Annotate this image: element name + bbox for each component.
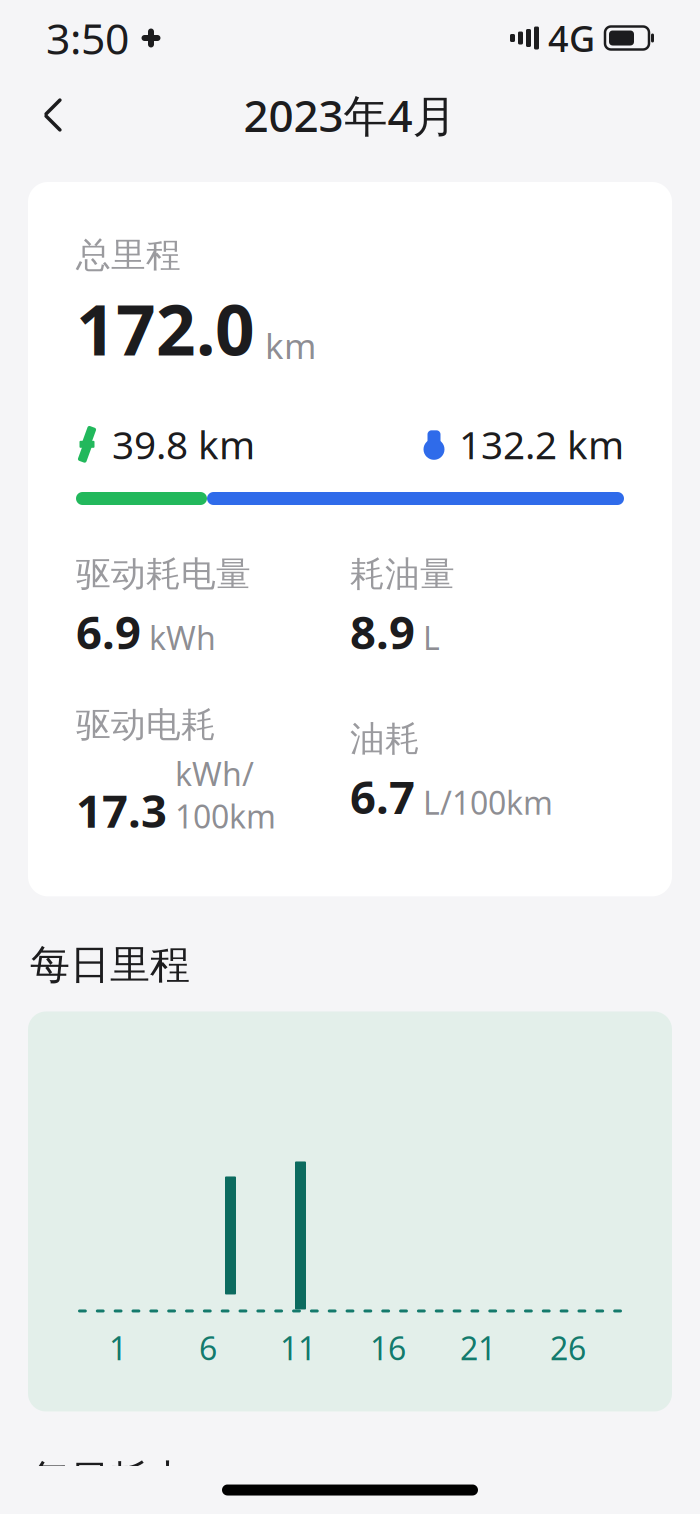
staticText: 2023年4月 (243, 86, 456, 144)
staticText: L (423, 616, 440, 659)
staticText: L/100km (423, 781, 553, 823)
staticText: 6.9 (76, 602, 141, 662)
staticText: 4G (548, 14, 595, 62)
staticText: 39.8 km (112, 419, 255, 470)
staticText: 132.2 km (459, 419, 624, 470)
staticText: 油耗 (350, 718, 420, 760)
staticText: 16 (370, 1326, 406, 1369)
staticText: 21 (460, 1326, 496, 1369)
staticText: 耗油量 (350, 553, 455, 596)
staticText: 6 (199, 1326, 217, 1369)
staticText: 总里程 (76, 234, 181, 277)
staticText: 每日里程 (30, 940, 190, 989)
button[interactable]: Back (22, 84, 84, 146)
staticText: 11 (280, 1326, 316, 1369)
staticText: 8.9 (350, 602, 415, 662)
staticText: 1 (109, 1326, 127, 1369)
staticText: 驱动电耗 (76, 704, 216, 746)
staticText: 17.3 (76, 780, 167, 840)
staticText: 3:50 (46, 10, 129, 66)
staticText: 驱动耗电量 (76, 553, 251, 596)
staticText: 172.0 (76, 283, 255, 375)
staticText: 6.7 (350, 766, 415, 826)
staticText: kWh/100km (175, 752, 276, 837)
staticText: 26 (550, 1326, 586, 1369)
staticText: km (265, 323, 316, 369)
staticText: kWh (149, 616, 216, 659)
staticText: 每日耗电 (30, 1455, 190, 1505)
